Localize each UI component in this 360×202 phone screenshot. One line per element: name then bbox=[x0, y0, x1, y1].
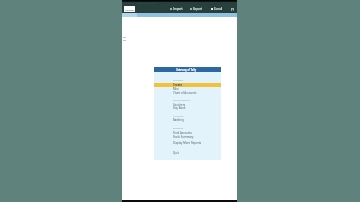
staticText: Gateway bbox=[125, 8, 135, 11]
button[interactable]: Display More Reports bbox=[154, 141, 221, 145]
staticText: REPORTS bbox=[173, 126, 184, 129]
button[interactable] bbox=[154, 83, 221, 87]
button[interactable]: Day Book bbox=[154, 106, 221, 110]
button[interactable]: Final Accounts bbox=[154, 131, 221, 135]
staticText: Export bbox=[193, 7, 202, 11]
staticText: Gateway of Tally bbox=[176, 68, 197, 72]
button[interactable]: Chart of Accounts bbox=[154, 91, 221, 95]
button[interactable]: Gateway bbox=[124, 6, 135, 12]
button[interactable]: Banking bbox=[154, 118, 221, 122]
staticText: Misc bbox=[173, 87, 179, 91]
button[interactable]: Create bbox=[154, 83, 221, 87]
staticText: Display More Reports bbox=[173, 141, 202, 145]
staticText: Stock Summary bbox=[173, 135, 194, 139]
button[interactable]: Misc bbox=[154, 87, 221, 91]
button[interactable]: Import bbox=[170, 6, 183, 11]
staticText: Vouchers bbox=[173, 103, 186, 107]
staticText: MASTERS bbox=[173, 78, 184, 81]
staticText: E-mail bbox=[214, 7, 223, 11]
staticText: UTILITIES bbox=[173, 114, 184, 117]
staticText: Create bbox=[173, 83, 183, 87]
button[interactable]: Quit bbox=[154, 151, 221, 155]
button[interactable]: Export bbox=[190, 6, 202, 11]
button[interactable]: E-mail bbox=[211, 6, 223, 11]
staticText: Final Accounts bbox=[173, 131, 192, 135]
button[interactable]: More options bbox=[230, 7, 235, 12]
staticText: Chart of Accounts bbox=[173, 91, 197, 95]
staticText: Import bbox=[173, 7, 183, 11]
staticText: F1 bbox=[231, 8, 235, 12]
button[interactable]: Stock Summary bbox=[154, 135, 221, 139]
staticText: Banking bbox=[173, 118, 184, 122]
staticText: TRANSACTIONS bbox=[173, 98, 191, 101]
button[interactable]: Vouchers bbox=[154, 103, 221, 107]
staticText: Day Book bbox=[173, 106, 186, 110]
staticText: Quit bbox=[173, 151, 179, 155]
